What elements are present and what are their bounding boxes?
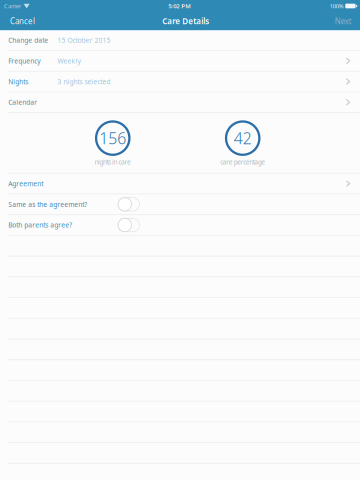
staticText: Calendar (8, 98, 37, 107)
staticText: Same as the agreement? (8, 200, 87, 209)
staticText: Agreement (8, 179, 43, 188)
staticText: 15 October 2015 (57, 36, 110, 45)
button[interactable]: 3 nights selected (0, 72, 360, 92)
button[interactable]: Agreement (0, 174, 360, 194)
staticText: care percentage (220, 157, 265, 166)
staticText: Change date (8, 36, 48, 45)
button[interactable]: Same as the agreement? (0, 194, 360, 215)
staticText: Carrier (4, 2, 21, 10)
staticText: Care Details (162, 16, 209, 27)
staticText: 100% (330, 2, 344, 10)
staticText: 5:02 PM (168, 2, 191, 10)
button[interactable]: Calendar (0, 92, 360, 113)
staticText: nights in care (94, 157, 131, 166)
staticText: Next (335, 16, 352, 27)
staticText: 42 (234, 127, 252, 149)
staticText: Cancel (10, 16, 35, 27)
button[interactable]: Next (326, 12, 360, 30)
staticText: Nights (8, 77, 28, 86)
button[interactable]: Weekly (0, 51, 360, 72)
staticText: 156 (99, 127, 126, 149)
button[interactable]: Cancel (0, 12, 45, 30)
button[interactable]: Both parents agree? (0, 215, 360, 236)
staticText: Weekly (57, 56, 80, 65)
staticText: Both parents agree? (8, 220, 72, 230)
staticText: 3 nights selected (57, 77, 110, 86)
staticText: Frequency (8, 56, 40, 65)
